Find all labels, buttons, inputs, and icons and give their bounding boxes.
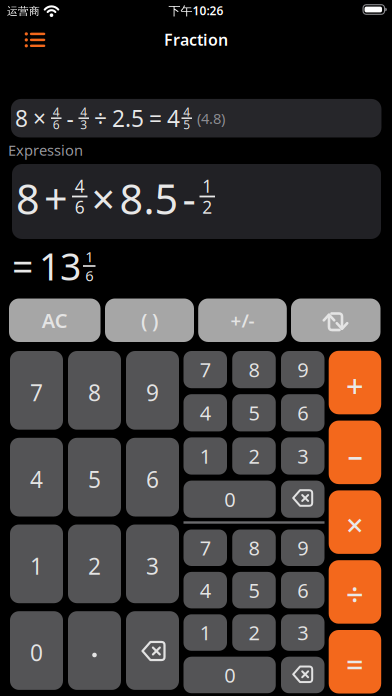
staticText: Expression	[8, 140, 83, 160]
staticText: 6	[53, 117, 60, 132]
staticText: 0	[30, 637, 43, 668]
staticText: 2	[248, 443, 259, 469]
staticText: 8	[248, 356, 259, 383]
staticText: 1	[85, 247, 93, 266]
staticText: 5	[248, 577, 259, 603]
staticText: 6	[75, 195, 85, 218]
staticText: Fraction	[164, 29, 228, 50]
staticText: 7	[200, 534, 211, 561]
staticText: 1	[30, 551, 43, 581]
staticText: 下午10:26	[168, 2, 223, 18]
staticText: 1	[200, 619, 211, 646]
staticText: +	[346, 365, 364, 405]
staticText: 4	[80, 104, 87, 120]
staticText: –	[347, 434, 362, 475]
staticText: 1	[200, 443, 211, 469]
staticText: ( )	[141, 307, 158, 334]
staticText: 4	[167, 103, 180, 133]
staticText: 13	[39, 241, 81, 291]
staticText: 5	[183, 117, 190, 132]
staticText: +	[44, 171, 68, 226]
staticText: 4	[75, 174, 85, 197]
staticText: 3	[297, 443, 308, 469]
staticText: 3	[80, 117, 87, 132]
staticText: 6	[85, 266, 93, 285]
staticText: 8	[88, 377, 101, 407]
staticText: 2.5	[112, 103, 144, 133]
staticText: 1	[202, 174, 212, 197]
staticText: 9	[297, 356, 308, 383]
staticText: ×	[91, 171, 115, 226]
staticText: 4	[200, 577, 211, 603]
staticText: =	[346, 644, 364, 685]
staticText: 4	[200, 399, 211, 426]
staticText: 4	[30, 464, 43, 494]
staticText: 7	[200, 356, 211, 383]
staticText: 3	[297, 619, 308, 646]
staticText: 9	[146, 377, 159, 407]
staticText: 8	[16, 171, 40, 226]
staticText: +/-	[230, 308, 254, 333]
staticText: 6	[297, 399, 308, 426]
staticText: =	[12, 241, 33, 291]
staticText: 8	[248, 534, 259, 561]
staticText: 2	[88, 551, 101, 581]
staticText: 6	[297, 577, 308, 603]
staticText: 4	[183, 104, 190, 120]
staticText: 8	[15, 103, 28, 133]
staticText: 7	[30, 377, 43, 407]
staticText: 0	[224, 662, 235, 688]
staticText: AC	[42, 307, 68, 334]
staticText: 5	[248, 399, 259, 426]
staticText: 9	[297, 534, 308, 561]
staticText: 5	[88, 464, 101, 494]
staticText: ÷	[346, 574, 364, 615]
staticText: =	[149, 103, 162, 133]
staticText: ×	[346, 504, 364, 545]
staticText: 2	[248, 619, 259, 646]
staticText: 4	[53, 104, 60, 120]
staticText: ÷	[94, 103, 107, 133]
staticText: -	[182, 171, 195, 226]
staticText: 6	[146, 464, 159, 494]
staticText: 2	[202, 195, 212, 218]
staticText: 8.5	[119, 171, 178, 226]
staticText: (4.8)	[197, 108, 225, 128]
staticText: 运营商	[7, 5, 40, 18]
staticText: 0	[224, 486, 235, 512]
staticText: -	[66, 103, 73, 133]
staticText: ×	[33, 103, 46, 133]
staticText: 3	[146, 551, 159, 581]
